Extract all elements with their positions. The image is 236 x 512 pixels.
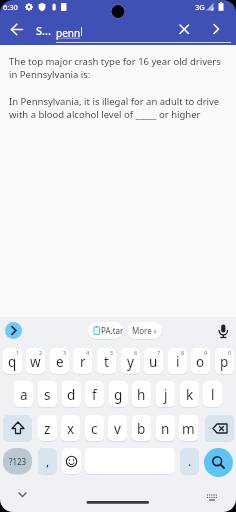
staticText: d (67, 386, 76, 404)
button[interactable]: i (168, 348, 187, 374)
staticText: p (220, 353, 229, 371)
button[interactable] (212, 320, 234, 342)
button[interactable] (3, 415, 32, 441)
staticText: 7 (157, 349, 161, 356)
button[interactable]: b (132, 415, 151, 441)
staticText: c (91, 420, 98, 438)
staticText: 1 (16, 349, 20, 356)
button[interactable]: n (156, 415, 175, 441)
staticText: e (56, 353, 64, 371)
staticText: 6:30 (3, 2, 18, 12)
staticText: n (161, 420, 170, 438)
button[interactable] (172, 17, 196, 41)
staticText: In Pennsylvania, it is illegal for an ad… (9, 95, 220, 121)
staticText: w (30, 353, 41, 371)
button[interactable]: d (62, 381, 81, 407)
staticText: l (211, 386, 215, 404)
staticText: a (20, 386, 28, 404)
staticText: u (149, 353, 158, 371)
staticText: g (114, 386, 123, 404)
staticText: j (164, 386, 168, 404)
button[interactable]: ?123 (3, 448, 32, 474)
staticText: , (46, 453, 50, 469)
staticText: 3 (63, 349, 67, 356)
staticText: m (182, 420, 195, 438)
button[interactable] (204, 17, 228, 41)
staticText: h (137, 386, 146, 404)
staticText: k (186, 386, 194, 404)
button[interactable]: g (109, 381, 128, 407)
button[interactable]: v (108, 415, 127, 441)
button[interactable]: m (179, 415, 198, 441)
staticText: o (196, 353, 205, 371)
staticText: z (44, 420, 51, 438)
button[interactable]: q (3, 348, 22, 374)
staticText: t (104, 353, 109, 371)
button[interactable] (5, 322, 22, 339)
staticText: r (80, 353, 86, 371)
staticText: y (127, 353, 134, 371)
staticText: ?123 (9, 456, 27, 467)
button[interactable]: t (97, 348, 116, 374)
staticText: 6 (134, 349, 138, 356)
button[interactable] (4, 18, 28, 42)
staticText: i (176, 353, 180, 371)
button[interactable]: e (50, 348, 69, 374)
button[interactable]: . (180, 448, 199, 474)
button[interactable] (62, 448, 81, 474)
staticText: More › (132, 325, 157, 336)
staticText: S... (36, 23, 52, 38)
button[interactable]: f (85, 381, 104, 407)
button[interactable] (204, 448, 233, 477)
button[interactable]: s (38, 381, 57, 407)
staticText: 4 (86, 349, 90, 356)
staticText: 0 (228, 349, 232, 356)
staticText: The top major crash type for 16 year old… (9, 55, 221, 81)
staticText: q (8, 353, 17, 371)
button[interactable]: More › (127, 322, 162, 339)
button[interactable]: j (156, 381, 175, 407)
button[interactable]: PA.tar (88, 322, 123, 339)
button[interactable]: l (203, 381, 222, 407)
button[interactable]: a (14, 381, 33, 407)
button[interactable]: x (61, 415, 80, 441)
staticText: penn (56, 26, 81, 40)
staticText: 2 (39, 349, 43, 356)
button[interactable]: p (215, 348, 234, 374)
staticText: v (114, 420, 121, 438)
button[interactable]: o (191, 348, 210, 374)
button[interactable] (13, 486, 32, 504)
button[interactable]: c (85, 415, 104, 441)
staticText: 8 (181, 349, 185, 356)
button[interactable]: r (73, 348, 92, 374)
button[interactable] (202, 488, 222, 506)
button[interactable]: w (26, 348, 45, 374)
button[interactable]: k (180, 381, 199, 407)
staticText: 3G (195, 2, 205, 12)
button[interactable]: z (38, 415, 57, 441)
button[interactable]: h (132, 381, 151, 407)
staticText: f (92, 386, 97, 404)
staticText: x (67, 420, 75, 438)
staticText: s (44, 386, 51, 404)
button[interactable]: , (38, 448, 57, 474)
button[interactable]: y (121, 348, 140, 374)
button[interactable] (205, 415, 234, 441)
staticText: b (137, 420, 146, 438)
button[interactable]: u (144, 348, 163, 374)
staticText: 9 (204, 349, 208, 356)
staticText: 5 (110, 349, 114, 356)
staticText: PA.tar (101, 325, 123, 336)
staticText: . (188, 453, 192, 469)
